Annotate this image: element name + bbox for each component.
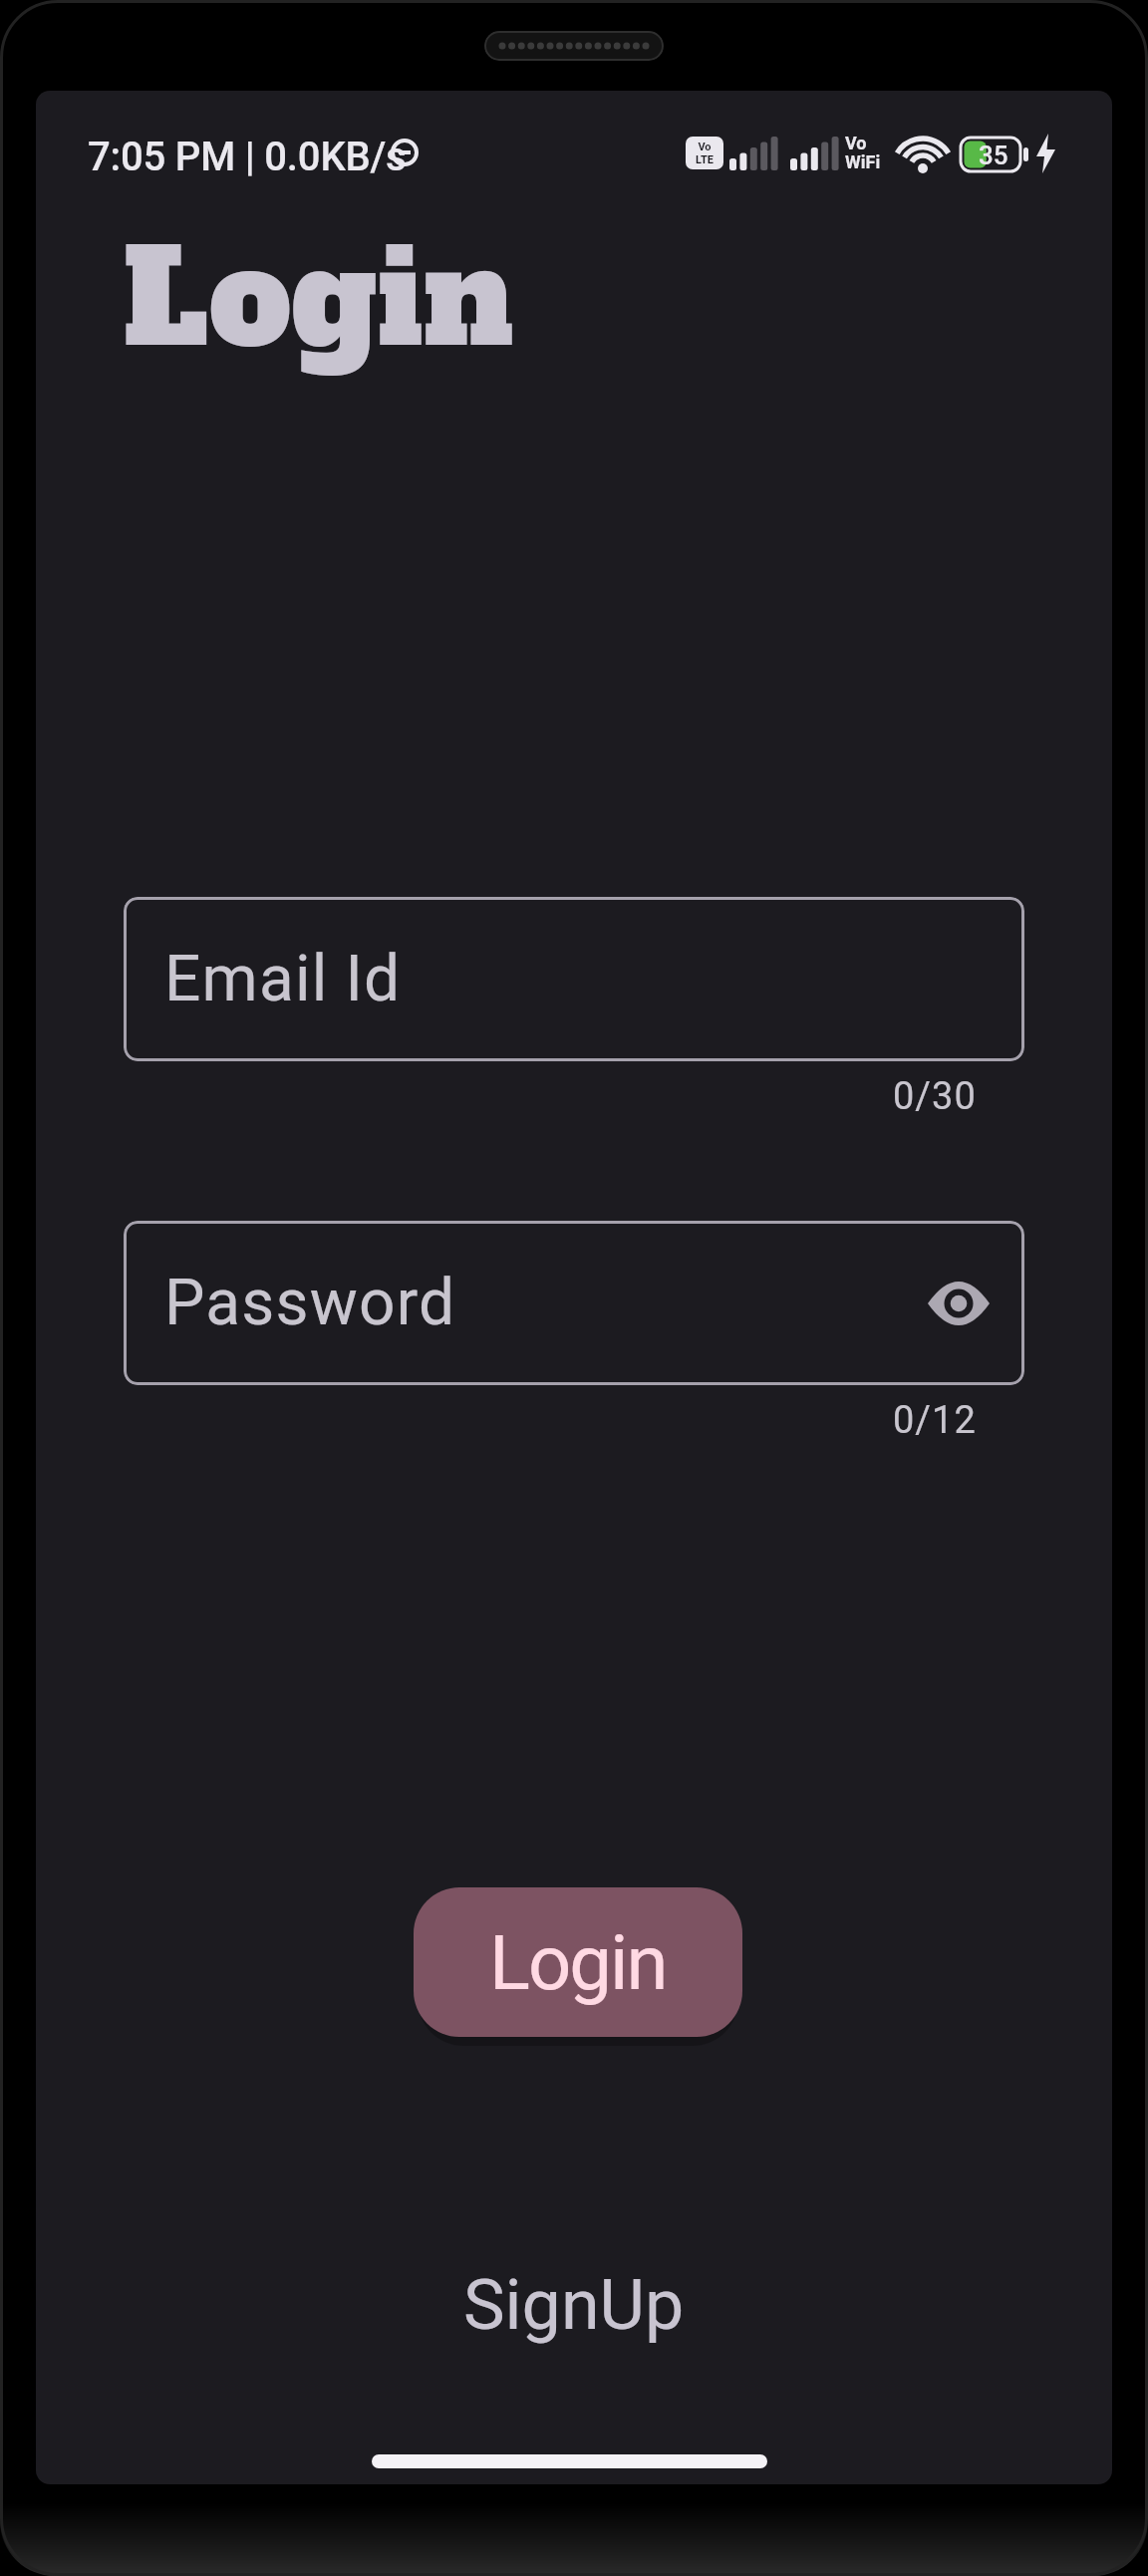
button[interactable]: Email Id <box>124 897 1024 1061</box>
staticText: 7:05 PM | 0.0KB/s <box>88 134 407 180</box>
button[interactable]: Login <box>414 1887 742 2037</box>
staticText: 0/30 <box>893 1074 977 1119</box>
button[interactable] <box>919 1264 999 1343</box>
staticText: Password <box>164 1266 456 1340</box>
staticText: Login <box>124 210 515 388</box>
staticText: 35 <box>979 141 1008 170</box>
button[interactable]: SignUp <box>463 2264 685 2346</box>
staticText: Vo WiFi <box>845 133 881 172</box>
staticText: 0/12 <box>893 1398 977 1443</box>
staticText: Login <box>489 1918 667 2007</box>
staticText: Email Id <box>164 942 402 1016</box>
button[interactable]: Password <box>124 1221 1024 1385</box>
staticText: Vo LTE <box>696 141 714 165</box>
